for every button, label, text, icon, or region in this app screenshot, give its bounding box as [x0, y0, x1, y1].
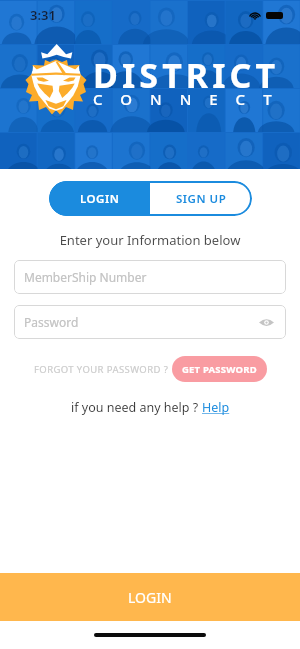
button[interactable]: SIGN UP	[150, 181, 252, 216]
staticText: MemberShip Number	[24, 269, 147, 285]
staticText: DISTRICT	[93, 52, 280, 98]
staticText: GET PASSWORD	[182, 363, 257, 376]
button[interactable]: MemberShip Number	[14, 260, 286, 294]
staticText: Password	[24, 314, 79, 330]
staticText: CONNECT	[93, 89, 290, 109]
button[interactable]: LOGIN	[0, 573, 300, 621]
staticText: SIGN UP	[176, 191, 227, 207]
staticText: LOGIN	[80, 191, 120, 207]
button[interactable]: Password	[14, 305, 286, 339]
staticText: LOGIN	[128, 588, 172, 607]
staticText: if you need any help ?	[71, 399, 202, 416]
staticText: Enter your Information below	[0, 231, 300, 249]
button[interactable]: Show password	[256, 312, 276, 332]
button[interactable]: Help	[202, 399, 230, 416]
button[interactable]: LOGIN	[49, 181, 150, 216]
staticText: 3:31	[30, 6, 56, 24]
button[interactable]: FORGOT YOUR PASSWORD ?	[34, 363, 169, 376]
button[interactable]: GET PASSWORD	[172, 356, 267, 382]
